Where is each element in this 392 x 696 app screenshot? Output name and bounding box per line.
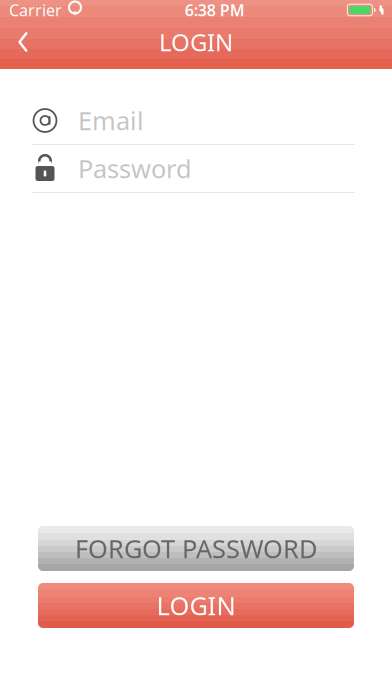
staticText: Carrier — [9, 0, 62, 21]
button[interactable]: LOGIN — [38, 583, 354, 628]
staticText: Email — [78, 104, 144, 137]
button[interactable]: Email — [32, 97, 355, 144]
button[interactable]: FORGOT PASSWORD — [38, 526, 354, 571]
button[interactable]: Password — [32, 145, 355, 192]
staticText: 6:38 PM — [185, 0, 245, 21]
staticText: LOGIN — [159, 26, 233, 58]
staticText: LOGIN — [156, 589, 235, 622]
button[interactable]: Back — [0, 20, 46, 64]
staticText: FORGOT PASSWORD — [75, 532, 317, 565]
staticText: Password — [78, 152, 192, 185]
